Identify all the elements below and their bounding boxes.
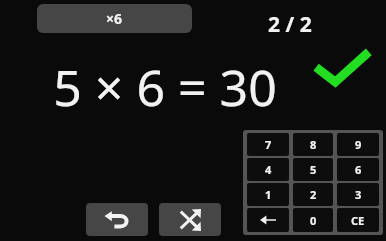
staticText: 2 / 2 bbox=[268, 10, 312, 36]
button[interactable]: ×6 bbox=[37, 4, 192, 33]
button[interactable]: 6 bbox=[337, 158, 379, 181]
staticText: 1 bbox=[265, 187, 272, 202]
button[interactable]: CE bbox=[337, 208, 379, 232]
staticText: 6 bbox=[355, 162, 362, 177]
button[interactable]: 1 bbox=[247, 183, 289, 206]
staticText: 7 bbox=[265, 137, 272, 152]
staticText: 3 bbox=[355, 187, 362, 202]
button[interactable]: 0 bbox=[293, 208, 333, 232]
staticText: 0 bbox=[310, 213, 317, 228]
staticText: 9 bbox=[355, 137, 362, 152]
button[interactable]: Shuffle bbox=[159, 203, 221, 236]
button[interactable]: Undo bbox=[86, 203, 148, 236]
button[interactable]: 7 bbox=[247, 133, 289, 156]
button[interactable]: 3 bbox=[337, 183, 379, 206]
staticText: 2 bbox=[310, 187, 317, 202]
button[interactable]: 4 bbox=[247, 158, 289, 181]
other: Correct bbox=[314, 50, 370, 90]
staticText: 4 bbox=[265, 162, 272, 177]
button[interactable]: Backspace bbox=[247, 208, 289, 232]
staticText: 5 bbox=[310, 162, 317, 177]
button[interactable]: 5 bbox=[293, 158, 333, 181]
button[interactable]: 2 bbox=[293, 183, 333, 206]
button[interactable]: 8 bbox=[293, 133, 333, 156]
staticText: CE bbox=[351, 213, 365, 228]
button[interactable]: 9 bbox=[337, 133, 379, 156]
staticText: 5 × 6 = 30 bbox=[53, 53, 277, 113]
staticText: ×6 bbox=[106, 9, 123, 28]
staticText: 8 bbox=[310, 137, 317, 152]
